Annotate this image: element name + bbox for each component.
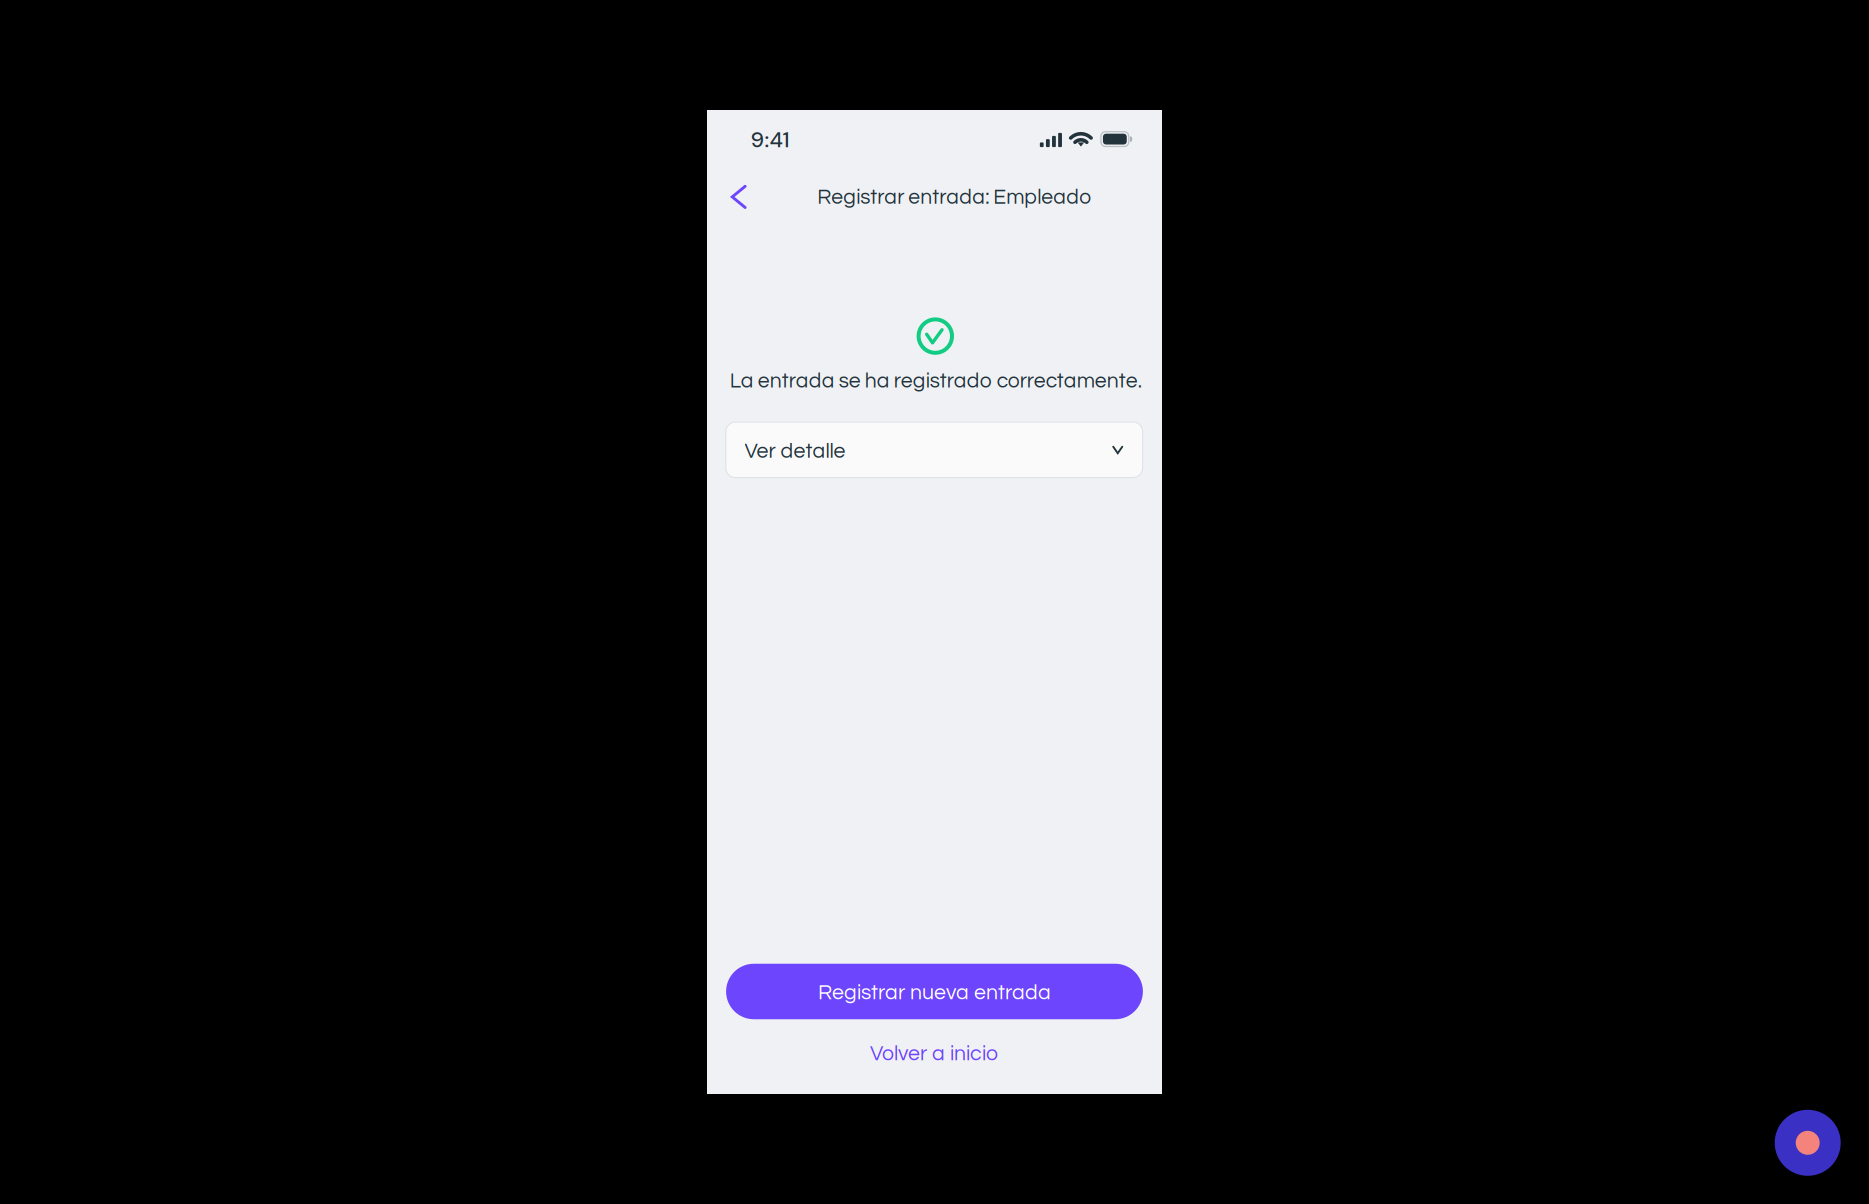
button[interactable]: Volver a inicio xyxy=(726,1035,1142,1071)
staticText: La entrada se ha registrado correctament… xyxy=(730,370,1142,392)
button[interactable]: Back xyxy=(716,175,762,219)
staticText: Ver detalle xyxy=(744,440,845,462)
staticText: Registrar entrada: Empleado xyxy=(817,187,1091,208)
button[interactable]: Ver detalle xyxy=(726,422,1143,478)
button[interactable]: Registrar nueva entrada xyxy=(726,964,1143,1019)
staticText: Volver a inicio xyxy=(870,1043,998,1065)
staticText: 9:41 xyxy=(750,126,789,154)
staticText: Registrar nueva entrada xyxy=(818,982,1051,1004)
